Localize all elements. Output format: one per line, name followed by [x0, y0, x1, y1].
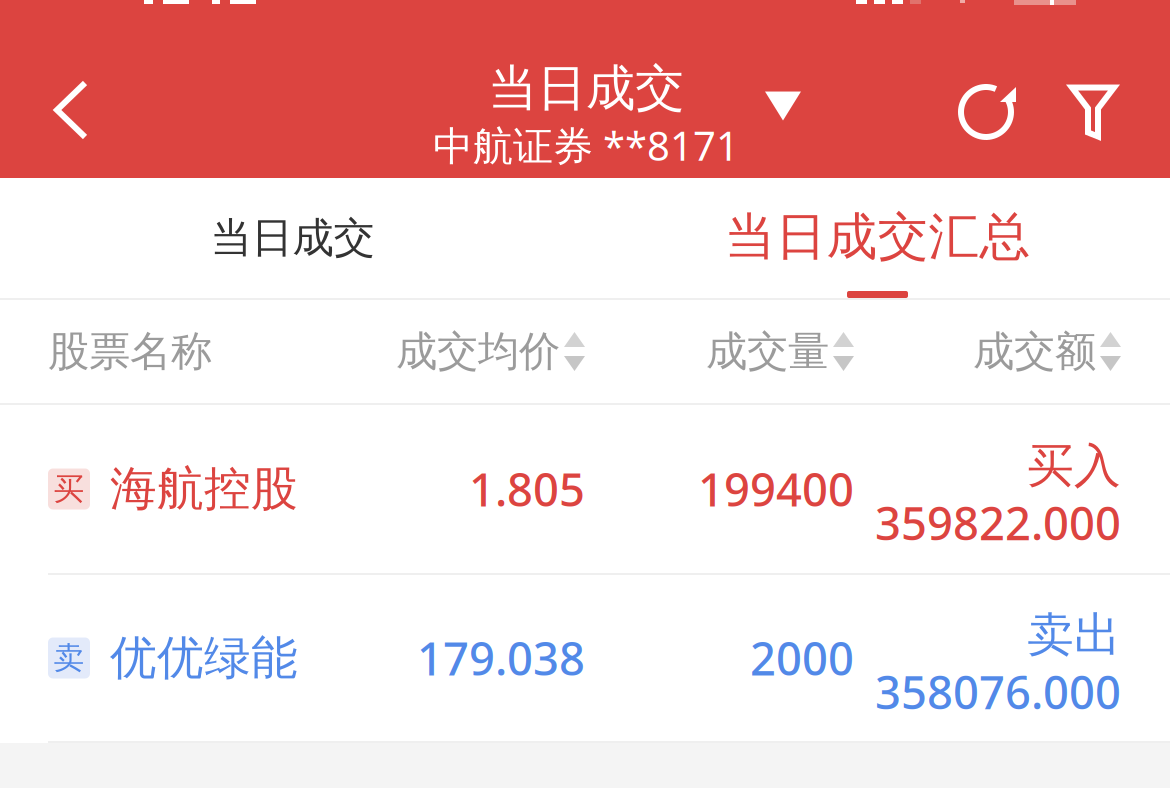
staticText: 成交额: [973, 326, 1096, 377]
button[interactable]: 卖: [0, 575, 1170, 741]
staticText: 卖: [53, 639, 84, 677]
button[interactable]: 刷新: [936, 56, 1040, 168]
staticText: 股票名称: [48, 326, 212, 377]
staticText: 成交均价: [396, 326, 560, 377]
staticText: 1.805: [469, 459, 585, 519]
button[interactable]: 成交量: [585, 326, 854, 377]
staticText: 买: [53, 470, 84, 508]
staticText: 358076.000: [875, 662, 1121, 722]
staticText: 当日成交: [210, 213, 374, 263]
staticText: 当日成交: [488, 58, 684, 119]
button[interactable]: 当日成交: [376, 58, 796, 183]
staticText: 优优绿能: [110, 629, 298, 687]
staticText: 买入: [1027, 437, 1121, 494]
button[interactable]: 买: [0, 405, 1170, 573]
button[interactable]: 当日成交: [0, 178, 585, 298]
button[interactable]: 成交均价: [345, 326, 585, 377]
staticText: 359822.000: [875, 493, 1121, 553]
staticText: 2000: [750, 628, 854, 688]
button[interactable]: 成交额: [854, 326, 1121, 377]
staticText: 海航控股: [110, 460, 298, 518]
button[interactable]: 返回: [19, 54, 123, 166]
staticText: 成交量: [706, 326, 829, 377]
button[interactable]: 切换账户: [743, 66, 823, 146]
staticText: 当日成交汇总: [724, 206, 1030, 268]
staticText: 中航证券 **8171: [433, 119, 739, 172]
button[interactable]: 筛选: [1041, 56, 1145, 168]
staticText: 卖出: [1027, 606, 1121, 663]
staticText: 199400: [698, 459, 854, 519]
button[interactable]: 当日成交汇总: [585, 178, 1170, 298]
staticText: 179.038: [417, 628, 585, 688]
